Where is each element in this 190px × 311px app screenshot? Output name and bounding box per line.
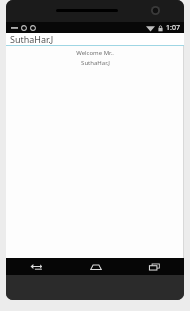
button[interactable]: SuthaHar.J bbox=[6, 33, 184, 45]
staticText: Welcome Mr.. bbox=[76, 49, 114, 57]
button[interactable]: Back bbox=[6, 258, 66, 275]
button[interactable]: Home bbox=[66, 258, 125, 275]
staticText: SuthaHar.J bbox=[81, 59, 110, 67]
button[interactable]: Recent apps bbox=[125, 258, 184, 275]
staticText: 1:07 bbox=[166, 23, 180, 33]
staticText: SuthaHar.J bbox=[10, 33, 54, 45]
